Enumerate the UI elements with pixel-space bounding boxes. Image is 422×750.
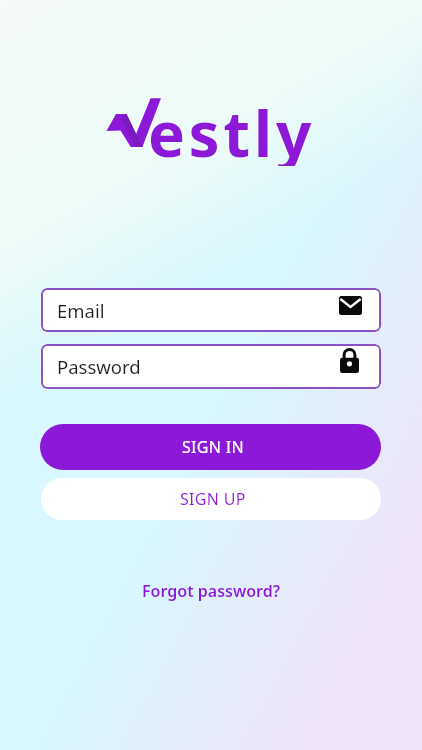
staticText: estly <box>148 91 315 166</box>
button[interactable]: Forgot password? <box>0 576 422 606</box>
button[interactable]: Password <box>41 344 381 389</box>
other: Password <box>340 349 359 373</box>
staticText: Email <box>57 298 105 323</box>
button[interactable]: SIGN UP <box>41 478 381 520</box>
staticText: Password <box>57 354 141 379</box>
staticText: Forgot password? <box>142 580 281 602</box>
other: Email <box>339 296 362 315</box>
staticText: SIGN UP <box>180 488 246 510</box>
button[interactable]: Email <box>41 288 381 332</box>
button[interactable]: SIGN IN <box>40 424 381 470</box>
staticText: SIGN IN <box>182 436 244 458</box>
